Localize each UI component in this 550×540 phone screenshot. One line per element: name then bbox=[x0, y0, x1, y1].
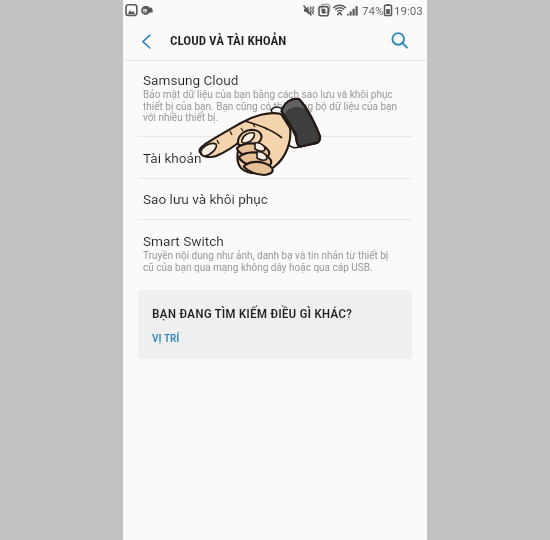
staticText: Bảo mật dữ liệu của bạn bằng cách sao lư… bbox=[143, 89, 399, 124]
staticText: 74% bbox=[362, 4, 384, 18]
button[interactable]: Sao lưu và khôi phục bbox=[123, 179, 427, 219]
staticText: Sao lưu và khôi phục bbox=[143, 191, 268, 207]
staticText: 19:03 bbox=[394, 4, 423, 18]
button[interactable]: Smart Switch bbox=[123, 222, 427, 284]
staticText: CLOUD VÀ TÀI KHOẢN bbox=[170, 33, 287, 48]
button[interactable]: Navigate up bbox=[131, 28, 159, 56]
staticText: VỊ TRÍ bbox=[152, 331, 180, 344]
staticText: BẠN ĐANG TÌM KIẾM ĐIỀU GÌ KHÁC? bbox=[152, 305, 352, 321]
button[interactable]: Tài khoản bbox=[123, 137, 427, 178]
button[interactable]: Search bbox=[384, 27, 412, 55]
staticText: Truyền nội dung như ảnh, danh bạ và tin … bbox=[143, 250, 399, 274]
staticText: Smart Switch bbox=[143, 233, 224, 249]
button[interactable]: Samsung Cloud bbox=[123, 61, 427, 136]
staticText: Samsung Cloud bbox=[143, 72, 239, 88]
button[interactable]: BẠN ĐANG TÌM KIẾM ĐIỀU GÌ KHÁC? bbox=[138, 290, 412, 359]
staticText: Tài khoản bbox=[143, 150, 202, 166]
